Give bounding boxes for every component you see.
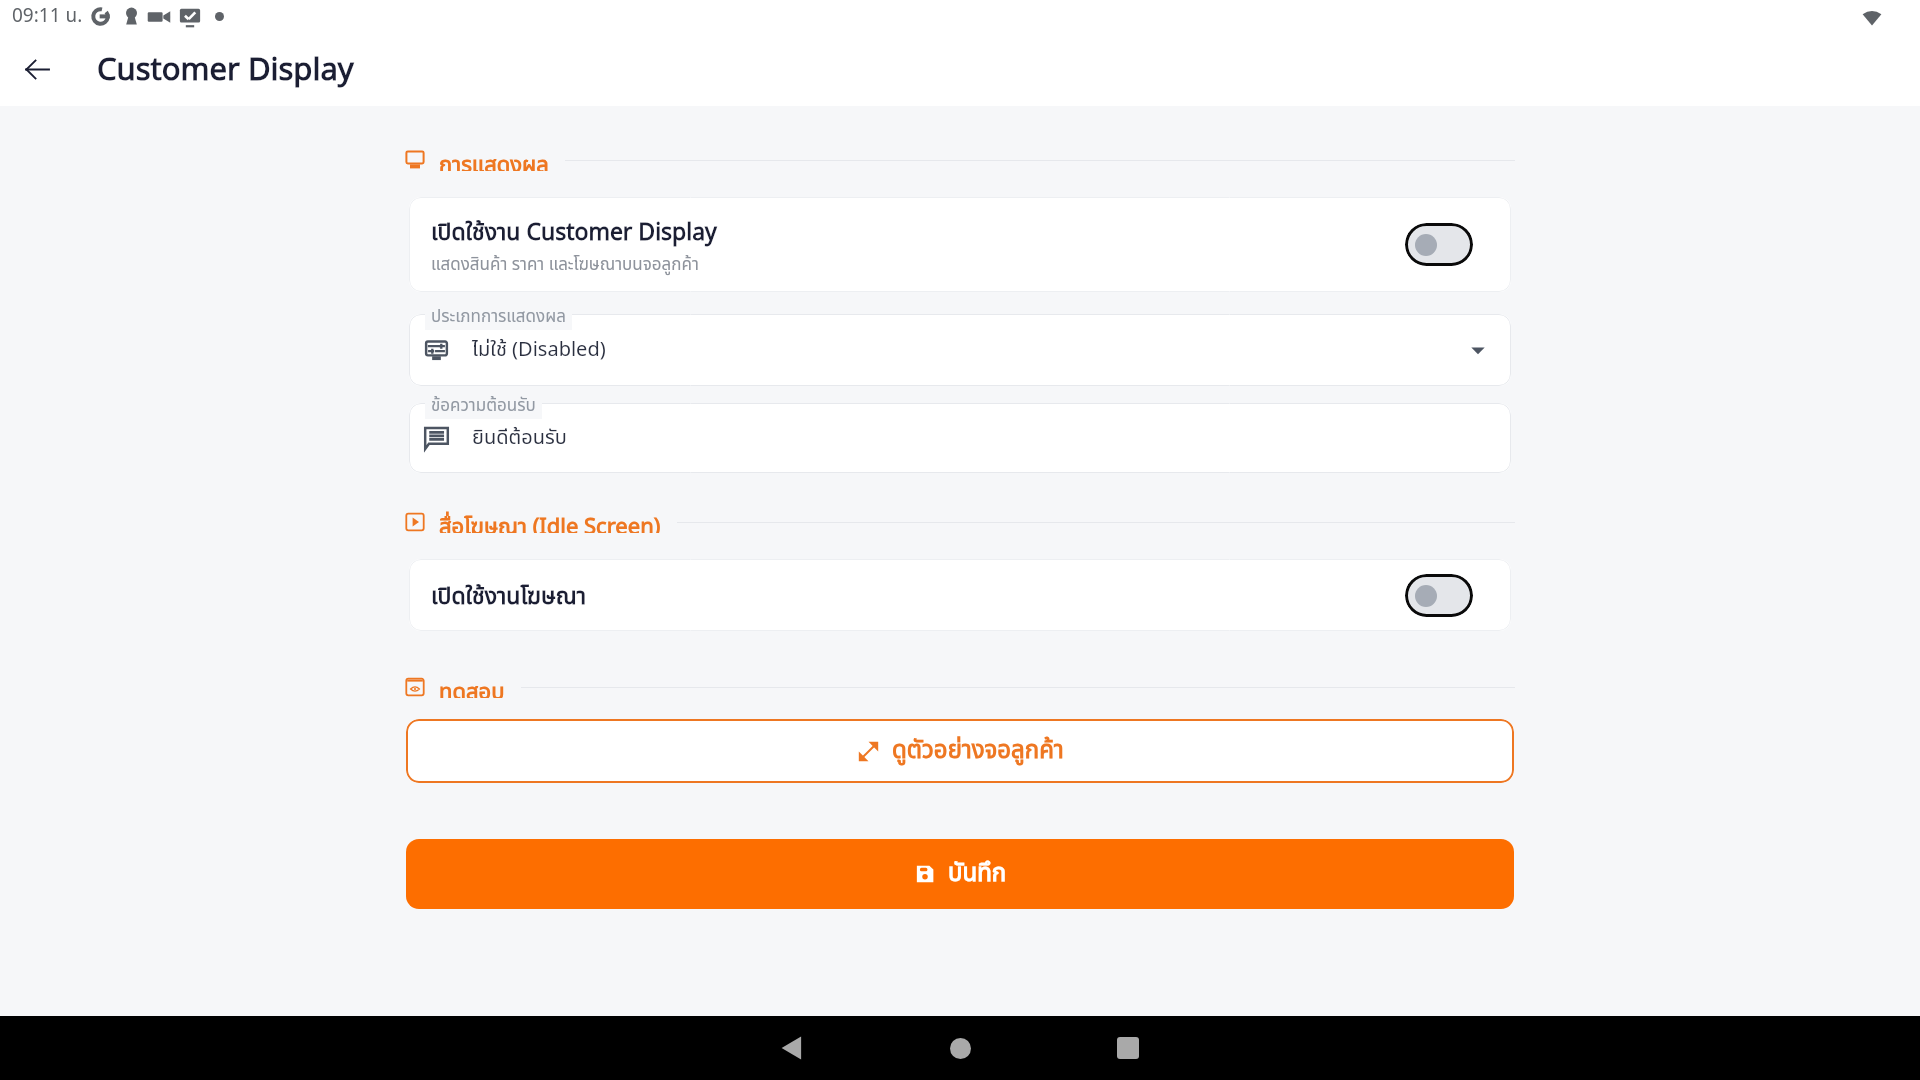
staticText: ทดสอบ: [439, 676, 505, 698]
button[interactable]: Toggle: [1405, 223, 1473, 266]
button[interactable]: Home: [928, 1016, 992, 1080]
staticText: 09:11 น.: [12, 2, 83, 31]
staticText: สื่อโฆษณา (Idle Screen): [439, 511, 661, 533]
staticText: เปิดใช้งานโฆษณา: [431, 580, 586, 615]
button[interactable]: Toggle: [1405, 574, 1473, 617]
button[interactable]: ยินดีต้อนรับ: [409, 403, 1511, 473]
staticText: เปิดใช้งาน Customer Display: [431, 216, 717, 251]
staticText: บันทึก: [948, 856, 1007, 892]
button[interactable]: บันทึก: [406, 839, 1514, 909]
staticText: แสดงสินค้า ราคา และโฆษณาบนจอลูกค้า: [431, 252, 699, 278]
button[interactable]: เปิดใช้งาน Customer Display: [409, 197, 1511, 292]
staticText: ข้อความต้อนรับ: [431, 393, 536, 419]
button[interactable]: ไม่ใช้ (Disabled): [409, 314, 1511, 386]
button[interactable]: Back: [760, 1016, 824, 1080]
button[interactable]: เปิดใช้งานโฆษณา: [409, 559, 1511, 631]
staticText: การแสดงผล: [439, 149, 549, 171]
staticText: Customer Display: [97, 47, 354, 94]
staticText: ดูตัวอย่างจอลูกค้า: [892, 733, 1064, 769]
button[interactable]: Recents: [1096, 1016, 1160, 1080]
staticText: ยินดีต้อนรับ: [472, 423, 567, 453]
staticText: ประเภทการแสดงผล: [431, 304, 566, 330]
button[interactable]: Back: [13, 45, 61, 93]
button[interactable]: ดูตัวอย่างจอลูกค้า: [406, 719, 1514, 783]
staticText: ไม่ใช้ (Disabled): [472, 335, 606, 365]
